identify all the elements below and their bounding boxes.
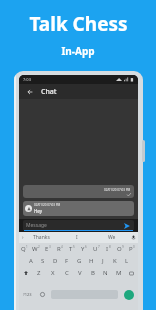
staticText: R [57,245,61,253]
button[interactable]: 02/01/20 07:03 PM [23,201,134,216]
button[interactable]: X [46,267,60,279]
button[interactable]: P [126,243,138,255]
button[interactable]: A [24,255,37,267]
button[interactable]: Z [32,267,46,279]
staticText: 4 [61,245,63,249]
button[interactable]: H [85,255,97,267]
staticText: X [51,269,55,277]
staticText: 7:03 [23,77,31,82]
button[interactable]: B [86,267,99,279]
staticText: H [89,257,94,265]
staticText: W [32,245,38,253]
button[interactable]: D [49,255,61,267]
button[interactable]: 02/01/20 07:03 PM [23,185,134,198]
staticText: D [53,257,58,265]
staticText: J [102,257,104,265]
staticText: I [106,245,109,253]
staticText: O [117,245,122,253]
staticText: 02/01/20 07:03 PM [34,203,61,207]
staticText: Q [21,245,26,253]
staticText: Y [81,245,85,253]
staticText: N [103,269,108,277]
button[interactable]: T [66,243,78,255]
button[interactable]: Message [23,220,134,231]
button[interactable]: V [73,267,86,279]
staticText: Message [26,222,47,229]
button[interactable]: I [102,243,114,255]
staticText: 5 [73,245,75,249]
button[interactable]: ?123 [19,279,35,310]
button[interactable]: M [112,267,125,279]
button[interactable]: We [94,232,129,243]
button[interactable]: Y [78,243,90,255]
staticText: G [77,257,82,265]
staticText: 8 [109,245,111,249]
button[interactable]: Q [19,243,30,255]
button[interactable]: Voice input [129,232,138,243]
button[interactable]: K [109,255,121,267]
button[interactable]: S [37,255,49,267]
button[interactable]: G [73,255,85,267]
button[interactable]: F [61,255,73,267]
staticText: C [65,269,69,277]
staticText: 02/01/20 07:03 PM [104,188,131,192]
button[interactable]: Send [123,222,131,230]
button[interactable]: Send message [120,279,138,310]
button[interactable]: L [121,255,133,267]
button[interactable]: Shift [19,267,32,279]
button[interactable]: E [42,243,54,255]
staticText: In-App [61,44,95,58]
staticText: L [125,257,129,265]
staticText: We [108,234,116,241]
button[interactable]: Backspace [125,267,138,279]
button[interactable]: Thanks [24,232,59,243]
staticText: 3 [49,245,51,249]
staticText: A [29,257,33,265]
staticText: I [76,234,78,241]
staticText: U [93,245,98,253]
button[interactable]: R [54,243,66,255]
staticText: K [113,257,117,265]
button[interactable]: I [59,232,94,243]
button[interactable]: Emoji [35,279,49,310]
button[interactable]: O [114,243,126,255]
staticText: Talk Chess [29,11,128,37]
staticText: 6 [85,245,87,249]
button[interactable]: W [30,243,42,255]
staticText: 1 [26,245,28,249]
button[interactable]: Back [24,86,36,98]
staticText: F [65,257,69,265]
staticText: V [78,269,82,277]
staticText: M [116,269,122,277]
staticText: Thanks [33,234,50,241]
button[interactable]: U [90,243,102,255]
staticText: T [69,245,73,253]
button[interactable]: N [99,267,112,279]
staticText: › [22,234,24,241]
staticText: E [45,245,49,253]
button[interactable]: J [97,255,109,267]
button[interactable]: C [60,267,73,279]
staticText: P [129,245,133,253]
staticText: S [41,257,45,265]
staticText: B [91,269,95,277]
staticText: Chat [41,87,57,97]
staticText: 2 [38,245,40,249]
staticText: Z [37,269,41,277]
staticText: 9 [122,245,124,249]
staticText: 7 [98,245,100,249]
staticText: 0 [133,245,135,249]
staticText: ?123 [23,292,32,297]
staticText: Hey [34,208,43,214]
